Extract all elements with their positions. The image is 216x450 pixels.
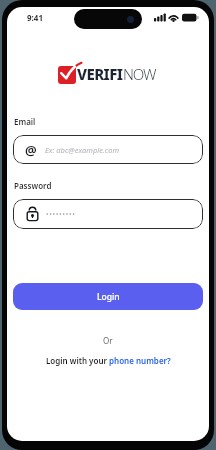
- staticText: @: [25, 141, 37, 159]
- staticText: Password: [14, 180, 52, 191]
- button[interactable]: Login with your phone number?: [46, 355, 171, 366]
- staticText: Login: [97, 291, 120, 303]
- staticText: 9:41: [27, 12, 43, 23]
- button[interactable]: @: [13, 135, 203, 164]
- staticText: VERIFI: [77, 64, 123, 84]
- staticText: Ex: abc@example.com: [45, 145, 120, 155]
- staticText: Or: [103, 335, 113, 346]
- button[interactable]: [13, 199, 203, 229]
- staticText: Email: [14, 116, 36, 127]
- staticText: NOW: [123, 64, 156, 84]
- button[interactable]: Login: [13, 283, 203, 310]
